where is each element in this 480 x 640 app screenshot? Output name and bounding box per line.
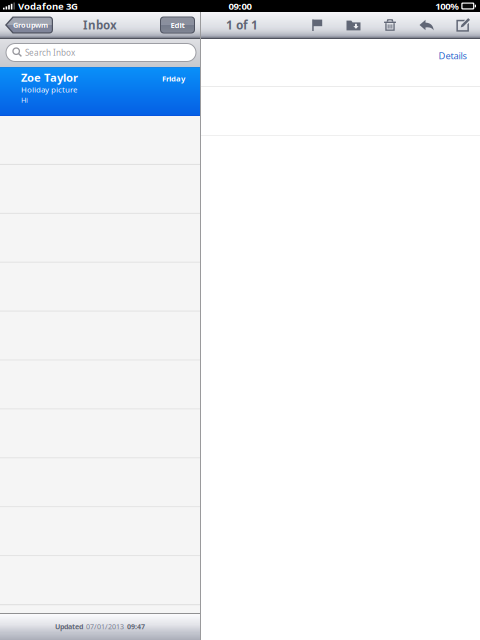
button[interactable]: Reply bbox=[414, 15, 438, 35]
staticText: Updated bbox=[55, 622, 83, 631]
staticText: 1 of 1 bbox=[226, 17, 258, 33]
staticText: Hi bbox=[21, 95, 28, 105]
staticText: Friday bbox=[162, 73, 185, 84]
button[interactable]: Delete bbox=[378, 15, 402, 35]
button[interactable]: Flag bbox=[305, 15, 329, 35]
button[interactable]: Zoe Taylor bbox=[0, 67, 200, 116]
button[interactable]: Move to folder bbox=[341, 15, 365, 35]
button[interactable]: Groupwm bbox=[0, 16, 53, 33]
button[interactable]: Edit bbox=[160, 16, 200, 33]
button[interactable]: Compose bbox=[451, 15, 475, 35]
staticText: Inbox bbox=[83, 17, 117, 33]
staticText: 100% bbox=[435, 0, 459, 13]
staticText: Vodafone 3G bbox=[18, 0, 78, 13]
staticText: Search Inbox bbox=[25, 47, 75, 58]
staticText: Edit bbox=[170, 20, 184, 30]
staticText: Groupwm bbox=[13, 20, 48, 30]
button[interactable]: Details bbox=[438, 49, 480, 62]
staticText: 09:00 bbox=[228, 0, 251, 13]
staticText: Details bbox=[438, 49, 466, 62]
staticText: 07/01/2013 bbox=[86, 622, 124, 631]
staticText: Holiday picture bbox=[21, 84, 77, 95]
staticText: 09:47 bbox=[127, 622, 145, 631]
button[interactable]: Search Inbox bbox=[0, 43, 200, 61]
staticText: Zoe Taylor bbox=[21, 70, 78, 85]
